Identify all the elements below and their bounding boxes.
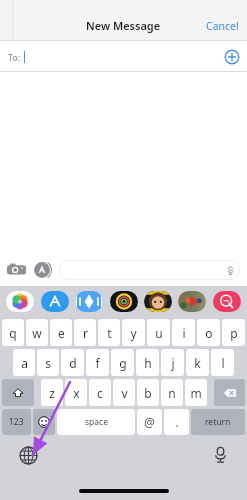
staticText: . xyxy=(175,414,179,430)
staticText: s xyxy=(45,355,51,371)
button[interactable]: f xyxy=(86,349,109,376)
staticText: l xyxy=(221,355,225,371)
button[interactable]: r xyxy=(74,319,96,346)
staticText: m xyxy=(190,385,202,401)
button[interactable]: Camera xyxy=(7,260,26,279)
staticText: c xyxy=(97,385,103,401)
staticText: @ xyxy=(144,414,155,430)
staticText: o xyxy=(205,325,213,341)
button[interactable]: 123 xyxy=(2,409,31,435)
button[interactable]: j xyxy=(161,349,184,376)
staticText: New Message xyxy=(86,18,161,33)
staticText: v xyxy=(121,385,128,401)
staticText: To: xyxy=(8,51,21,63)
button[interactable]: iMessage app xyxy=(213,291,241,312)
button[interactable]: i xyxy=(172,319,195,346)
staticText: x xyxy=(73,385,80,401)
staticText: j xyxy=(171,355,175,371)
staticText: q xyxy=(9,325,17,341)
button[interactable]: Change keyboard language xyxy=(19,446,38,465)
button[interactable]: m xyxy=(185,379,207,406)
button[interactable]: iMessage app xyxy=(144,291,172,312)
button[interactable]: g xyxy=(111,349,134,376)
staticText: y xyxy=(130,325,137,341)
button[interactable]: iMessage app xyxy=(41,291,69,312)
button[interactable]: k xyxy=(186,349,209,376)
button[interactable]: z xyxy=(41,379,63,406)
staticText: g xyxy=(119,355,127,371)
button[interactable]: Add contact xyxy=(224,49,240,65)
staticText: Cancel xyxy=(206,19,239,33)
staticText: i xyxy=(182,325,186,341)
button[interactable]: Emoji xyxy=(33,409,55,435)
button[interactable]: n xyxy=(161,379,183,406)
button[interactable]: b xyxy=(137,379,159,406)
button[interactable]: iMessage app xyxy=(110,291,138,312)
button[interactable]: y xyxy=(122,319,145,346)
button[interactable]: x xyxy=(65,379,87,406)
staticText: u xyxy=(155,325,163,341)
staticText: t xyxy=(107,325,112,341)
staticText: d xyxy=(69,355,77,371)
staticText: h xyxy=(144,355,152,371)
staticText: 123 xyxy=(9,416,24,428)
button[interactable]: e xyxy=(50,319,72,346)
staticText: return xyxy=(205,416,231,428)
button[interactable]: c xyxy=(89,379,111,406)
button[interactable]: h xyxy=(136,349,159,376)
button[interactable]: iMessage app xyxy=(6,291,34,312)
button[interactable]: @ xyxy=(137,409,162,435)
button[interactable]: Shift xyxy=(2,379,34,406)
staticText: f xyxy=(95,355,100,371)
staticText: b xyxy=(144,385,152,401)
button[interactable]: s xyxy=(37,349,59,376)
staticText: z xyxy=(49,385,55,401)
button[interactable]: Dictate xyxy=(212,446,229,463)
button[interactable]: . xyxy=(164,409,189,435)
staticText: w xyxy=(32,325,42,341)
button[interactable]: iMessage app xyxy=(178,291,206,312)
staticText: a xyxy=(21,355,28,371)
staticText: p xyxy=(230,325,238,341)
staticText: r xyxy=(83,325,88,341)
staticText: e xyxy=(58,325,65,341)
staticText: space xyxy=(85,416,108,428)
button[interactable]: Apps xyxy=(33,261,51,279)
button[interactable]: Backspace xyxy=(214,379,245,406)
button[interactable]: t xyxy=(98,319,120,346)
button[interactable]: o xyxy=(197,319,220,346)
button[interactable]: iMessage app xyxy=(75,291,103,312)
staticText: n xyxy=(168,385,176,401)
button[interactable]: p xyxy=(222,319,245,346)
button[interactable]: v xyxy=(113,379,135,406)
staticText: k xyxy=(194,355,201,371)
button[interactable]: space xyxy=(57,409,135,435)
button[interactable] xyxy=(59,260,240,280)
button[interactable]: Cancel xyxy=(198,15,247,37)
button[interactable]: d xyxy=(61,349,84,376)
button[interactable]: a xyxy=(13,349,35,376)
button[interactable]: return xyxy=(191,409,245,435)
button[interactable]: w xyxy=(26,319,48,346)
button[interactable]: l xyxy=(211,349,234,376)
button[interactable]: u xyxy=(147,319,170,346)
button[interactable]: q xyxy=(2,319,24,346)
